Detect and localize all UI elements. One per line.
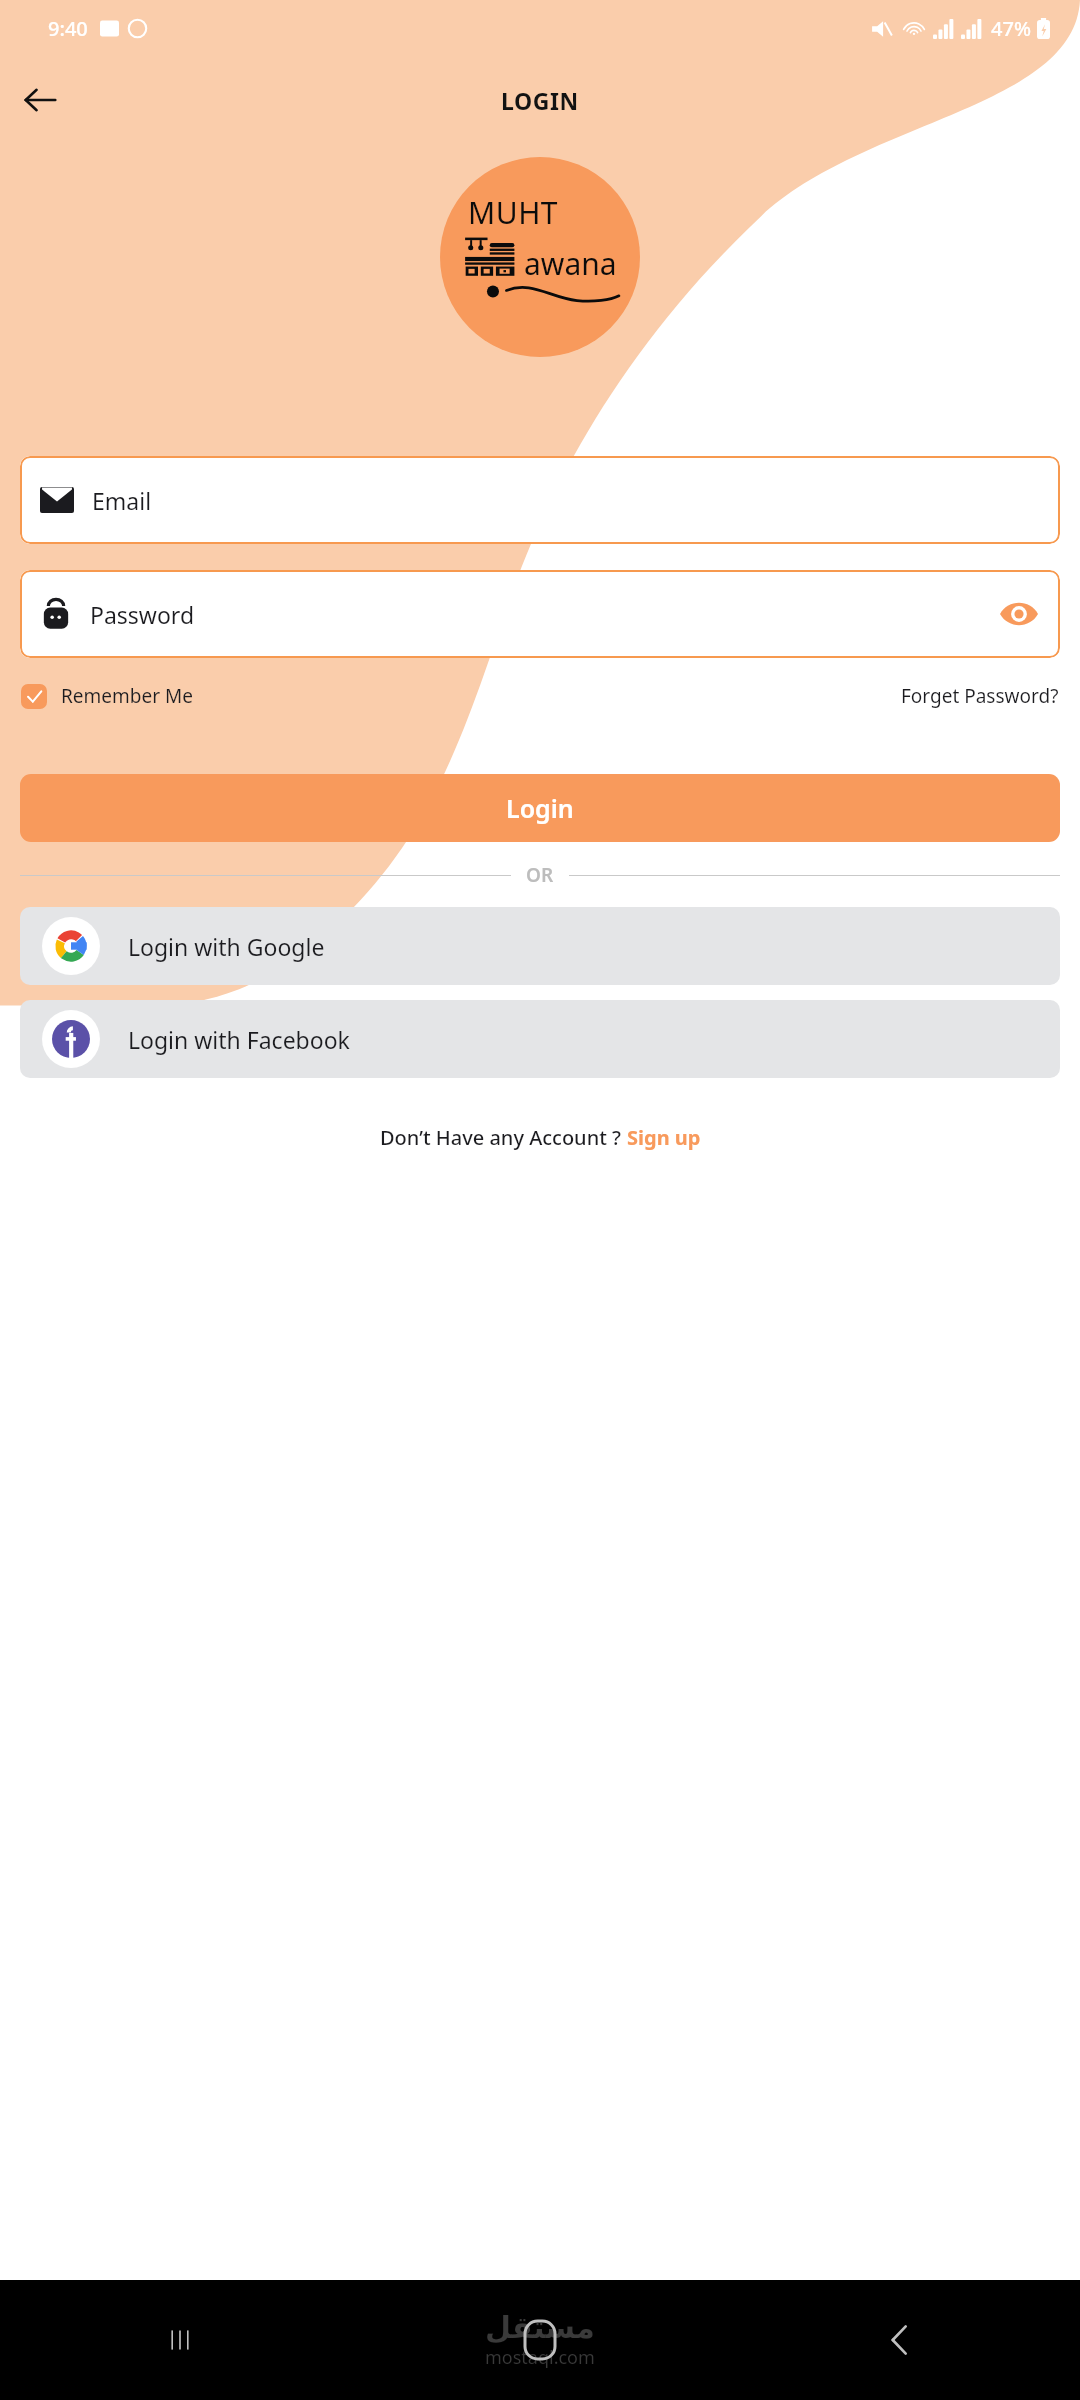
button[interactable]: Password <box>20 570 1060 658</box>
staticText: MUHT <box>468 192 559 233</box>
button[interactable]: Sign up <box>627 1124 701 1151</box>
staticText: Password <box>90 599 195 630</box>
staticText: awana <box>524 243 617 284</box>
button[interactable]: Back <box>720 2280 1080 2400</box>
staticText: Remember Me <box>61 683 193 709</box>
staticText: Login with Facebook <box>128 1024 350 1055</box>
button[interactable]: Back <box>14 74 66 126</box>
button[interactable]: Email <box>20 456 1060 544</box>
button[interactable]: Login <box>20 774 1060 842</box>
staticText: 47% <box>991 15 1031 42</box>
staticText: mostaql.com <box>485 2345 595 2370</box>
button[interactable]: Show password <box>998 593 1040 635</box>
staticText: Don’t Have any Account ? <box>380 1124 627 1151</box>
staticText: OR <box>526 862 554 888</box>
staticText: Sign up <box>627 1124 701 1151</box>
button[interactable]: Login with Facebook <box>20 1000 1060 1078</box>
staticText: Email <box>92 485 152 516</box>
staticText: LOGIN <box>501 85 579 116</box>
staticText: Login <box>506 791 574 825</box>
staticText: Forget Password? <box>901 683 1059 709</box>
button[interactable]: Forget Password? <box>901 683 1059 709</box>
staticText: مستقل <box>485 2310 595 2345</box>
button[interactable]: Remember Me <box>21 683 193 709</box>
staticText: 9:40 <box>48 15 88 42</box>
button[interactable]: Login with Google <box>20 907 1060 985</box>
button[interactable]: Home <box>360 2280 720 2400</box>
button[interactable]: Recent apps <box>0 2280 360 2400</box>
staticText: Login with Google <box>128 931 325 962</box>
